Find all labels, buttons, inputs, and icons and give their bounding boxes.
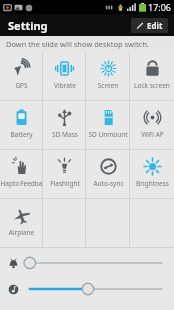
staticText: SD Mass xyxy=(52,130,78,139)
button[interactable]: Auto-sync xyxy=(86,150,130,198)
button[interactable]: Edit xyxy=(131,18,168,33)
staticText: Auto-sync xyxy=(93,179,124,188)
staticText: Lock screen xyxy=(134,81,170,90)
staticText: SD Unmount xyxy=(88,130,128,139)
button[interactable]: Battery xyxy=(0,101,43,149)
button[interactable]: Vibrate xyxy=(43,52,86,100)
staticText: 17:06 xyxy=(148,1,172,13)
button[interactable]: GPS xyxy=(0,52,43,100)
button[interactable]: Ringer volume xyxy=(0,250,174,276)
staticText: Edit xyxy=(147,20,163,31)
staticText: Brightness xyxy=(136,179,169,188)
button[interactable]: SD Unmount xyxy=(86,101,130,149)
staticText: WiFi AP xyxy=(141,130,164,139)
button[interactable]: Lock screen xyxy=(130,52,174,100)
staticText: HapticFeedback xyxy=(0,179,43,188)
button[interactable]: WiFi AP xyxy=(130,101,174,149)
button[interactable]: Airplane mode xyxy=(0,199,43,247)
button[interactable]: SD Mass xyxy=(43,101,86,149)
staticText: Flashlight xyxy=(50,179,80,188)
staticText: Screen timeout xyxy=(86,81,130,90)
button[interactable]: Media volume xyxy=(0,276,174,302)
button[interactable]: Brightness xyxy=(130,150,174,198)
staticText: Down the slide will show desktop switch. xyxy=(6,39,149,49)
staticText: Vibrate xyxy=(54,81,76,90)
staticText: GPS xyxy=(15,81,28,90)
staticText: Airplane mode xyxy=(0,228,43,237)
button[interactable]: Screen timeout xyxy=(86,52,130,100)
button[interactable]: HapticFeedback xyxy=(0,150,43,198)
staticText: Setting xyxy=(8,18,48,33)
button[interactable]: Flashlight xyxy=(43,150,86,198)
staticText: Battery xyxy=(10,130,33,139)
